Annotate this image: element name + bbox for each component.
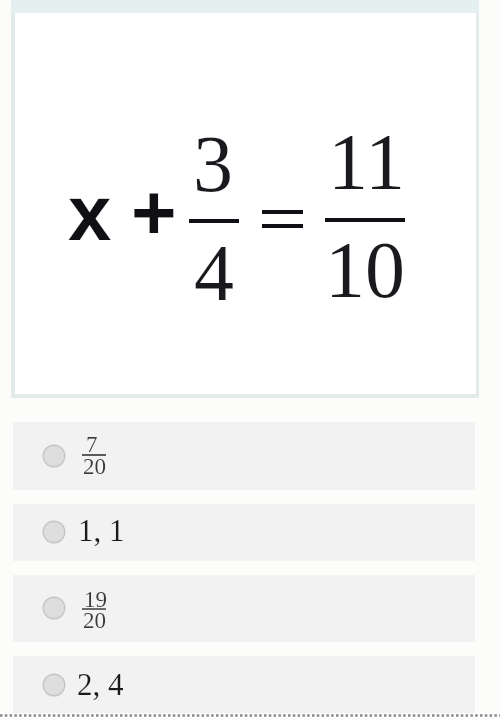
staticText: 10	[325, 226, 405, 315]
staticText: 20	[83, 608, 106, 633]
button[interactable]	[13, 422, 475, 490]
button[interactable]	[13, 575, 475, 642]
staticText: 20	[83, 454, 106, 479]
button[interactable]	[13, 656, 475, 713]
staticText: 4	[194, 229, 234, 318]
staticText: 1, 1	[78, 513, 125, 547]
staticText: +	[131, 168, 177, 255]
button[interactable]	[13, 504, 475, 561]
staticText: 2, 4	[77, 667, 124, 701]
staticText: 7	[86, 432, 98, 457]
staticText: x	[68, 169, 112, 256]
staticText: 3	[193, 120, 233, 209]
staticText: 11	[328, 118, 406, 207]
staticText: 19	[84, 587, 107, 612]
